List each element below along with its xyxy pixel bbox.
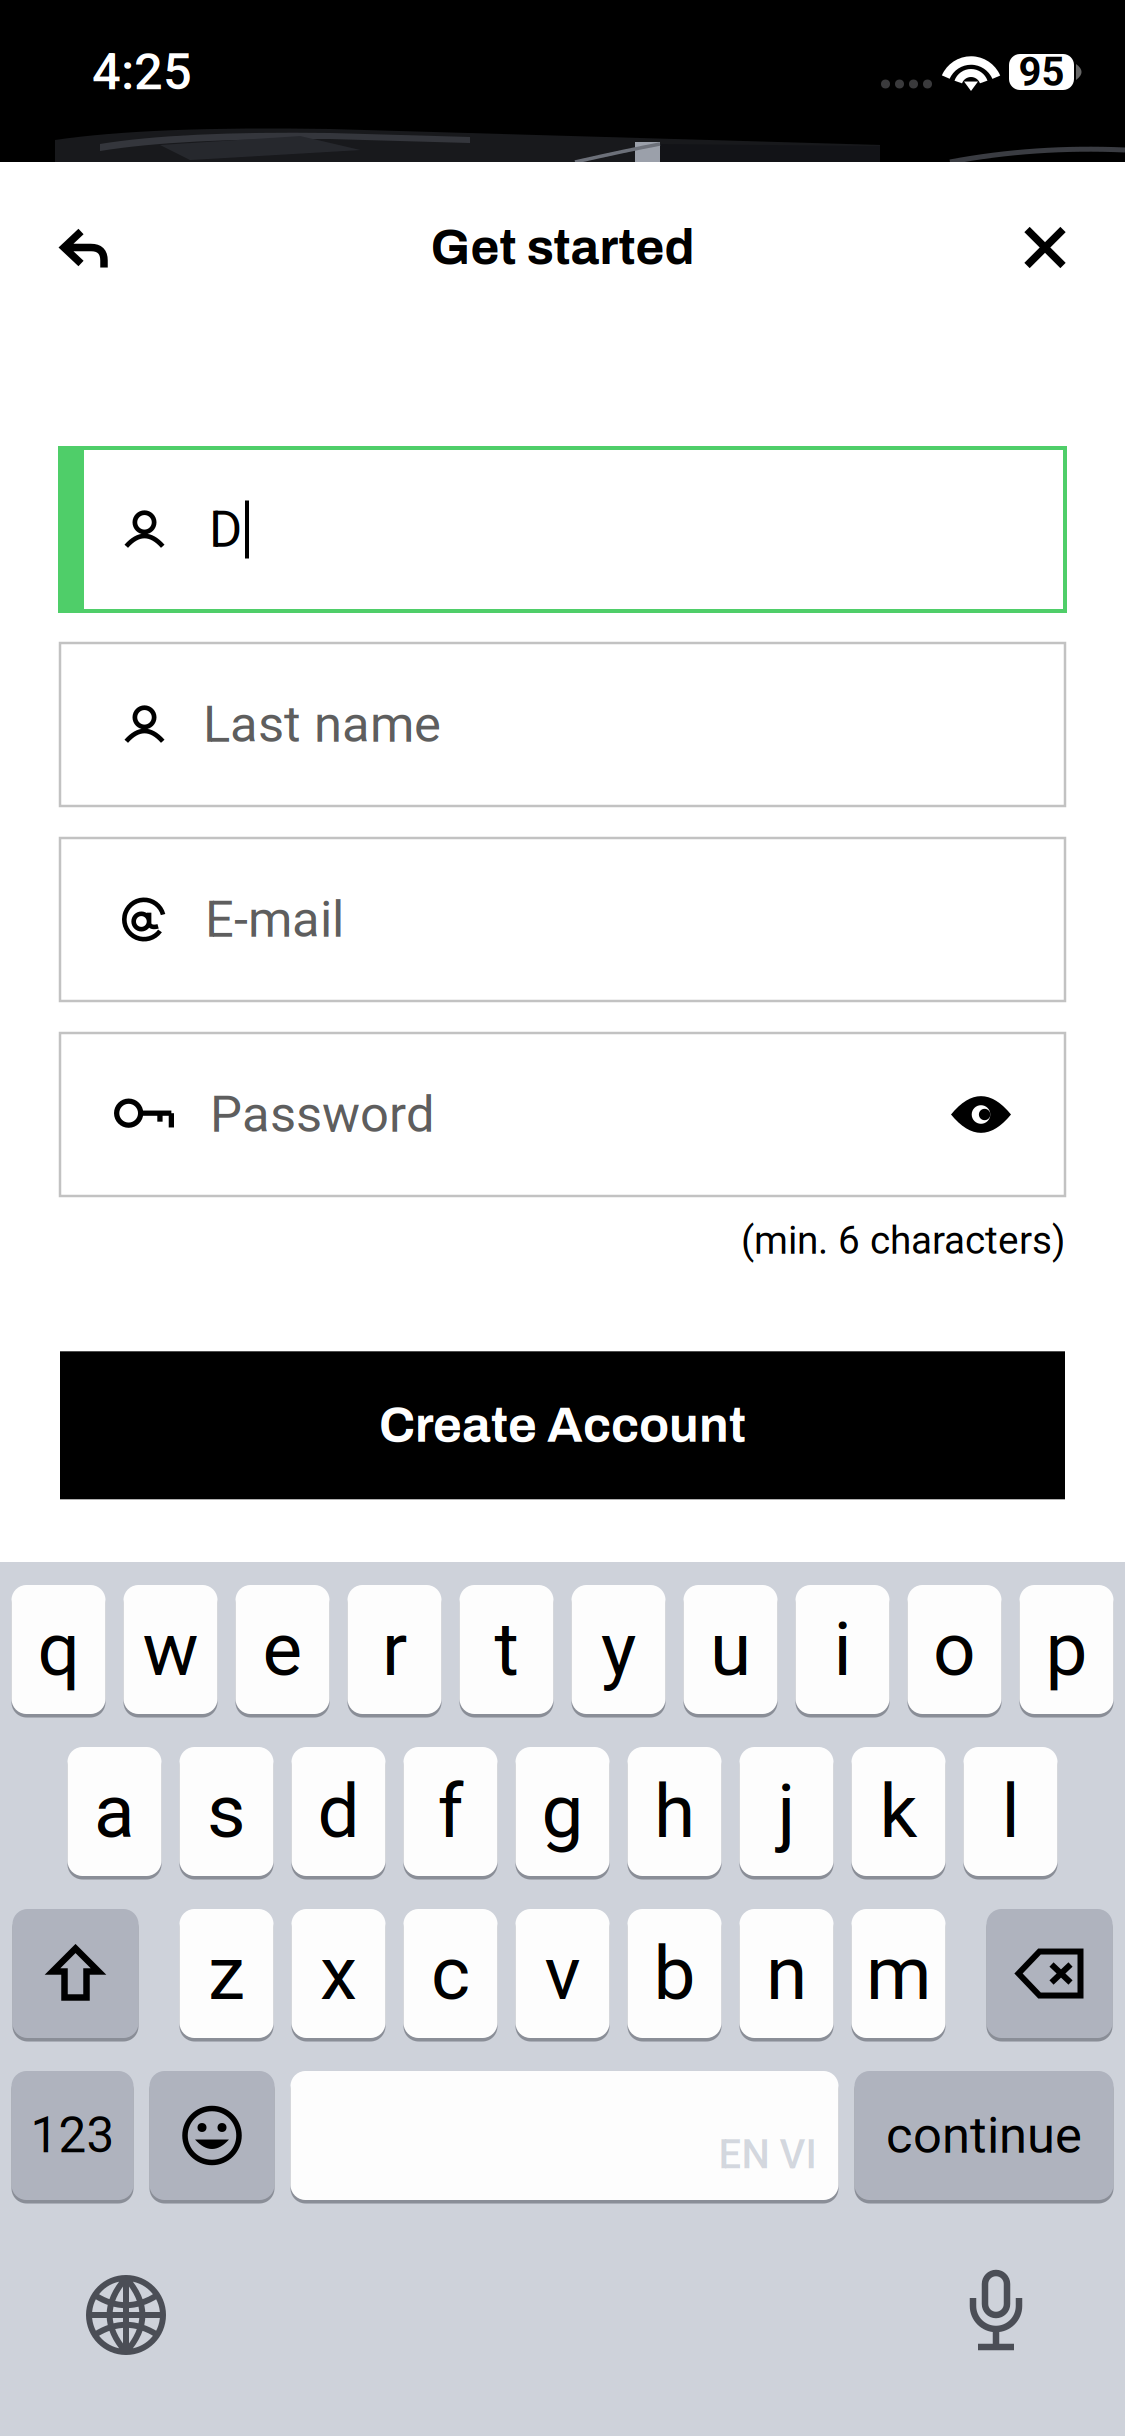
button[interactable]: Back [36,199,132,295]
staticText: D [209,500,242,559]
staticText: z [208,1930,245,2017]
staticText: e [262,1606,302,1693]
staticText: i [833,1606,851,1693]
button[interactable]: E-mail [60,838,1065,1001]
staticText: k [879,1768,917,1855]
button[interactable]: n [739,1909,833,2038]
button[interactable]: q [11,1585,105,1714]
button[interactable]: u [683,1585,777,1714]
button[interactable]: a [67,1747,161,1876]
staticText: r [382,1606,407,1693]
staticText: s [207,1768,246,1855]
button[interactable]: m [851,1909,945,2038]
staticText: b [653,1930,695,2017]
staticText: Create Account [379,1398,746,1452]
button[interactable]: f [403,1747,497,1876]
staticText: u [710,1606,751,1693]
button[interactable]: continue [854,2071,1113,2200]
button[interactable]: k [851,1747,945,1876]
staticText: h [654,1768,695,1855]
button[interactable]: Shift [12,1909,138,2038]
button[interactable]: y [571,1585,665,1714]
staticText: o [933,1606,976,1693]
staticText: Last name [203,695,441,754]
button[interactable]: w [123,1585,217,1714]
staticText: d [317,1768,359,1855]
staticText: g [541,1768,583,1855]
staticText: Password [210,1085,435,1144]
staticText: j [777,1768,795,1855]
button[interactable]: Create Account [60,1351,1065,1499]
staticText: l [1001,1768,1019,1855]
staticText: a [94,1768,135,1855]
staticText: 95 [1018,49,1064,95]
button[interactable]: Numbers [11,2071,133,2200]
button[interactable]: Password [60,1033,1065,1196]
button[interactable]: s [179,1747,273,1876]
staticText: v [544,1930,580,2017]
staticText: w [142,1606,198,1693]
button[interactable]: x [291,1909,385,2038]
staticText: t [494,1606,518,1693]
button[interactable]: Delete [986,1909,1112,2038]
button[interactable]: j [739,1747,833,1876]
staticText: continue [886,2106,1082,2165]
staticText: m [866,1930,931,2017]
button[interactable]: Dictation [941,2254,1051,2364]
button[interactable]: Close [997,199,1093,295]
staticText: Get started [430,221,694,274]
staticText: 4:25 [92,42,192,102]
button[interactable]: i [795,1585,889,1714]
button[interactable]: Last name [60,643,1065,806]
staticText: EN VI [718,2131,816,2178]
button[interactable]: Emoji [149,2071,274,2200]
button[interactable]: t [459,1585,553,1714]
staticText: f [437,1768,463,1855]
staticText: 123 [30,2107,114,2164]
button[interactable]: o [907,1585,1001,1714]
staticText: q [37,1606,79,1693]
button[interactable]: c [403,1909,497,2038]
button[interactable]: d [291,1747,385,1876]
staticText: y [601,1606,636,1693]
button[interactable]: v [515,1909,609,2038]
button[interactable]: e [235,1585,329,1714]
staticText: p [1045,1606,1087,1693]
staticText: x [320,1930,357,2017]
button[interactable]: Next keyboard [71,2254,181,2364]
button[interactable]: Space [290,2071,838,2200]
staticText: c [431,1930,470,2017]
staticText: E-mail [205,890,344,949]
button[interactable]: l [963,1747,1057,1876]
staticText: n [766,1930,807,2017]
button[interactable]: g [515,1747,609,1876]
button[interactable]: D [60,448,1065,611]
button[interactable]: h [627,1747,721,1876]
button[interactable]: z [179,1909,273,2038]
staticText: (min. 6 characters) [741,1218,1065,1263]
button[interactable]: r [347,1585,441,1714]
button[interactable]: p [1019,1585,1113,1714]
button[interactable]: b [627,1909,721,2038]
